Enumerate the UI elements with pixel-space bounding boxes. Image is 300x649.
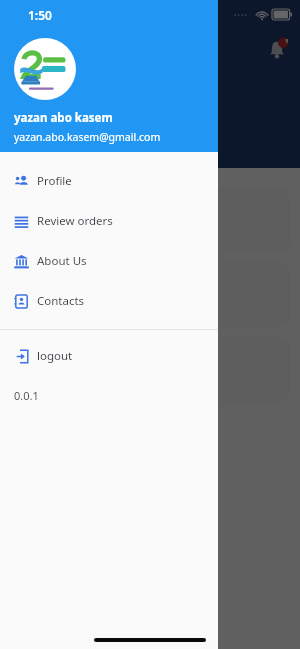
staticText: About Us	[37, 253, 87, 269]
button[interactable]: Notifications	[264, 36, 290, 62]
staticText: 1	[285, 37, 289, 45]
button[interactable]: al solution	[16, 262, 290, 328]
button[interactable]: logout	[0, 336, 218, 376]
button[interactable]: Profile	[0, 161, 218, 201]
button[interactable]: Contacts	[0, 281, 218, 321]
staticText: logout	[37, 348, 73, 364]
staticText: al solution	[28, 288, 77, 302]
button[interactable]: Profile photo	[14, 38, 76, 100]
button[interactable]: Close navigation drawer	[0, 0, 300, 649]
button[interactable]: ng	[16, 336, 290, 402]
staticText: 1:50	[28, 7, 52, 23]
button[interactable]: About Us	[0, 241, 218, 281]
button[interactable]: feel like new	[16, 188, 290, 254]
staticText: Contacts	[37, 293, 85, 309]
staticText: yazan abo kasem	[14, 110, 113, 126]
staticText: 0.0.1	[14, 388, 39, 403]
staticText: feel like new	[28, 214, 87, 228]
staticText: Profile	[37, 173, 72, 189]
button[interactable]: Review orders	[0, 201, 218, 241]
staticText: Review orders	[37, 213, 113, 229]
staticText: ng	[28, 350, 45, 368]
staticText: yazan.abo.kasem@gmail.com	[14, 130, 161, 144]
